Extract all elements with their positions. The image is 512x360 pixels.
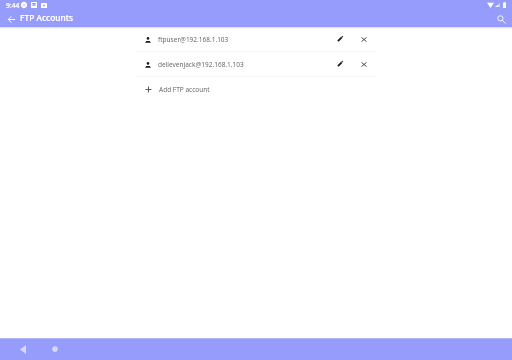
button[interactable]: Home (45, 339, 65, 359)
button[interactable]: dellevenjack@192.168.1.103 (136, 52, 376, 76)
staticText: dellevenjack@192.168.1.103 (158, 60, 244, 69)
button[interactable]: Navigate up (4, 12, 18, 26)
staticText: 9:44 (6, 1, 20, 10)
staticText: FTP Accounts (20, 12, 74, 23)
button[interactable]: Delete account (357, 32, 371, 46)
button[interactable]: ftpuser@192.168.1.103 (136, 27, 376, 51)
button[interactable]: Edit account (333, 57, 347, 71)
button[interactable]: Add FTP account (136, 77, 376, 101)
button[interactable]: Back (13, 339, 33, 359)
button[interactable]: Search (494, 12, 508, 26)
button[interactable]: Edit account (333, 32, 347, 46)
staticText: Add FTP account (159, 85, 210, 94)
staticText: ftpuser@192.168.1.103 (158, 35, 229, 44)
button[interactable]: Delete account (357, 57, 371, 71)
